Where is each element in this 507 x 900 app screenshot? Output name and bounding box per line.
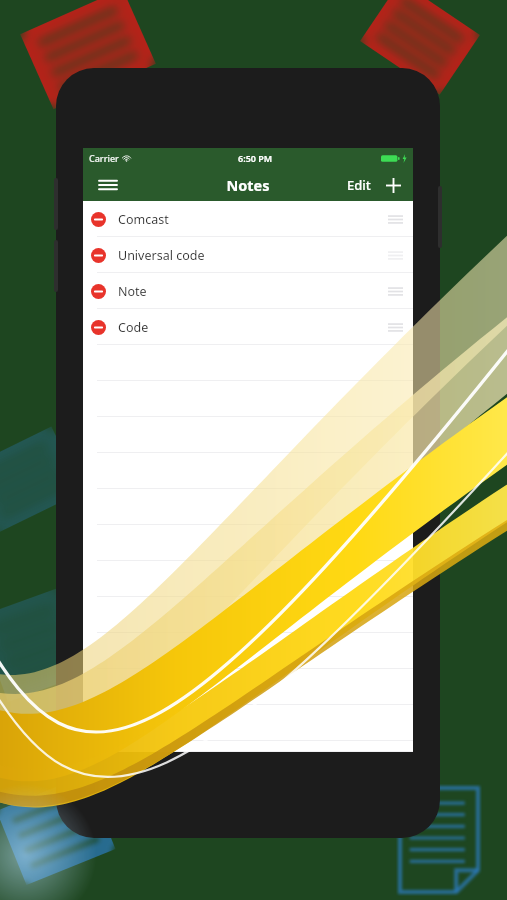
button[interactable]: Delete Universal code — [91, 248, 106, 263]
button[interactable]: Delete Universal code — [83, 237, 413, 273]
staticText: Comcast — [118, 211, 169, 228]
button[interactable]: Delete Note — [91, 284, 106, 299]
button[interactable]: Reorder Comcast — [387, 213, 403, 225]
staticText: Universal code — [118, 247, 205, 264]
staticText: 6:50 PM — [238, 152, 273, 164]
button[interactable]: Delete Note — [83, 273, 413, 309]
button[interactable]: Delete Comcast — [91, 212, 106, 227]
button[interactable]: Reorder Universal code — [387, 249, 403, 261]
button[interactable]: Delete Code — [91, 320, 106, 335]
button[interactable]: Reorder Code — [387, 321, 403, 333]
button[interactable]: Menu — [95, 172, 121, 198]
button[interactable]: Edit — [343, 172, 375, 198]
staticText: Note — [118, 283, 147, 300]
staticText: Carrier — [89, 152, 119, 164]
button[interactable]: Delete Comcast — [83, 201, 413, 237]
button[interactable]: Add note — [381, 173, 405, 197]
staticText: Code — [118, 319, 149, 336]
button[interactable]: Reorder Note — [387, 285, 403, 297]
staticText: Edit — [347, 176, 371, 194]
button[interactable]: Delete Code — [83, 309, 413, 345]
staticText: Notes — [226, 175, 270, 195]
